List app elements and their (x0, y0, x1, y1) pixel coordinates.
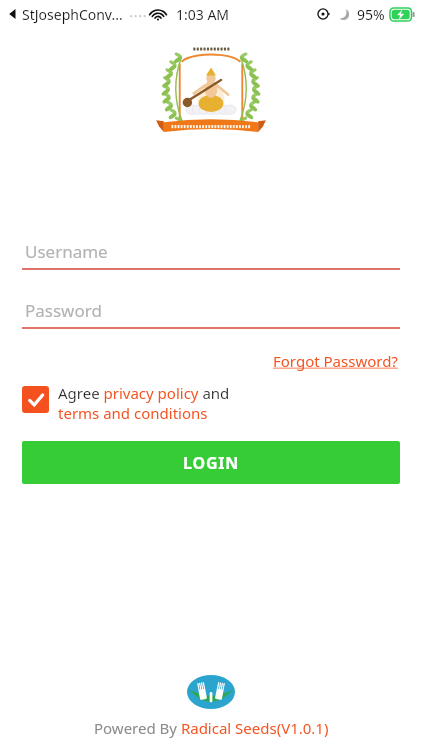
button[interactable]: Forgot Password? (271, 349, 400, 373)
button[interactable]: Agree to privacy policy and terms (22, 386, 49, 413)
staticText: StJosephConv... (22, 5, 123, 24)
staticText: Password (25, 299, 102, 322)
button[interactable]: Agree privacy policy and terms and condi… (58, 383, 230, 423)
button[interactable]: Username (22, 234, 400, 270)
staticText: Powered By Radical Seeds(V1.0.1) (94, 718, 329, 738)
staticText: LOGIN (183, 452, 240, 474)
staticText: 1:03 AM (176, 5, 230, 24)
staticText: Username (25, 240, 108, 263)
staticText: Agree privacy policy and terms and condi… (58, 383, 230, 423)
staticText: Forgot Password? (273, 351, 398, 371)
button[interactable]: LOGIN (22, 441, 400, 484)
button[interactable]: Password (22, 293, 400, 329)
staticText: 95% (357, 5, 385, 24)
